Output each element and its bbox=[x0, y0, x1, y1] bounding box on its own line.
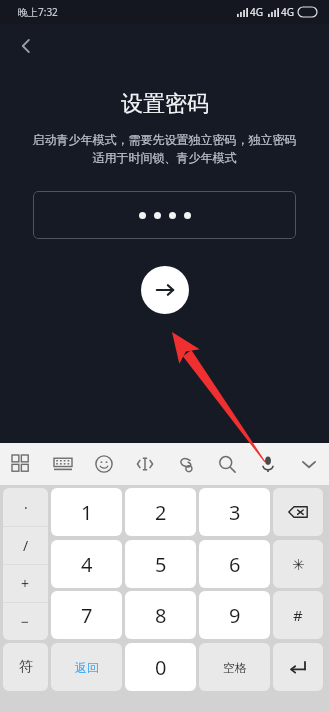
staticText: 返回 bbox=[75, 660, 99, 675]
staticText: / bbox=[23, 536, 29, 555]
staticText: 0 bbox=[155, 654, 167, 681]
staticText: 3 bbox=[229, 499, 241, 526]
button[interactable]: Backspace bbox=[273, 488, 323, 536]
button[interactable]: 4 bbox=[51, 540, 122, 588]
staticText: 2 bbox=[155, 499, 167, 526]
button[interactable]: Text tools bbox=[124, 443, 165, 485]
button[interactable]: Hide keyboard bbox=[288, 443, 329, 485]
staticText: 1 bbox=[81, 499, 93, 526]
staticText: 符 bbox=[19, 658, 33, 676]
button[interactable]: ✳ bbox=[273, 540, 323, 588]
staticText: 5 bbox=[155, 551, 167, 578]
button[interactable]: / bbox=[3, 527, 48, 564]
staticText: 6 bbox=[229, 551, 241, 578]
staticText: 9 bbox=[229, 602, 241, 629]
button[interactable]: Enter bbox=[273, 643, 323, 691]
staticText: 设置密码 bbox=[121, 90, 209, 118]
button[interactable]: Emoji bbox=[83, 443, 124, 485]
staticText: 晚上7:32 bbox=[18, 5, 58, 19]
staticText: # bbox=[293, 605, 303, 625]
button[interactable]: 0 bbox=[125, 643, 196, 691]
button[interactable]: 2 bbox=[125, 488, 196, 536]
button[interactable]: 返回 bbox=[51, 643, 122, 691]
staticText: 空格 bbox=[223, 660, 247, 675]
button[interactable]: # bbox=[273, 591, 323, 639]
button[interactable] bbox=[33, 191, 296, 239]
button[interactable]: 5 bbox=[125, 540, 196, 588]
button[interactable]: 空格 bbox=[199, 643, 270, 691]
staticText: 4G bbox=[250, 5, 263, 19]
button[interactable]: 7 bbox=[51, 591, 122, 639]
staticText: 4 bbox=[81, 551, 93, 578]
button[interactable]: Apps bbox=[0, 443, 42, 485]
button[interactable]: 8 bbox=[125, 591, 196, 639]
staticText: 启动青少年模式，需要先设置独立密码，独立密码适用于时间锁、青少年模式 bbox=[30, 132, 299, 166]
button[interactable]: 3 bbox=[199, 488, 270, 536]
button[interactable]: 9 bbox=[199, 591, 270, 639]
button[interactable]: · bbox=[3, 488, 48, 526]
button[interactable]: Search bbox=[206, 443, 247, 485]
staticText: 4G bbox=[281, 5, 294, 19]
button[interactable]: Back bbox=[6, 26, 46, 66]
button[interactable]: Next bbox=[141, 266, 189, 314]
staticText: · bbox=[24, 498, 28, 517]
staticText: ✳ bbox=[292, 556, 305, 573]
button[interactable]: Clipboard bbox=[165, 443, 206, 485]
button[interactable]: 符 bbox=[3, 643, 48, 691]
button[interactable]: Voice input bbox=[247, 443, 288, 485]
button[interactable]: 6 bbox=[199, 540, 270, 588]
staticText: 7 bbox=[81, 602, 93, 629]
button[interactable]: Keyboard bbox=[42, 443, 83, 485]
staticText: + bbox=[21, 574, 30, 593]
button[interactable]: + bbox=[3, 565, 48, 602]
staticText: 8 bbox=[155, 602, 167, 629]
button[interactable]: − bbox=[3, 603, 48, 640]
staticText: − bbox=[21, 612, 30, 631]
button[interactable]: 1 bbox=[51, 488, 122, 536]
